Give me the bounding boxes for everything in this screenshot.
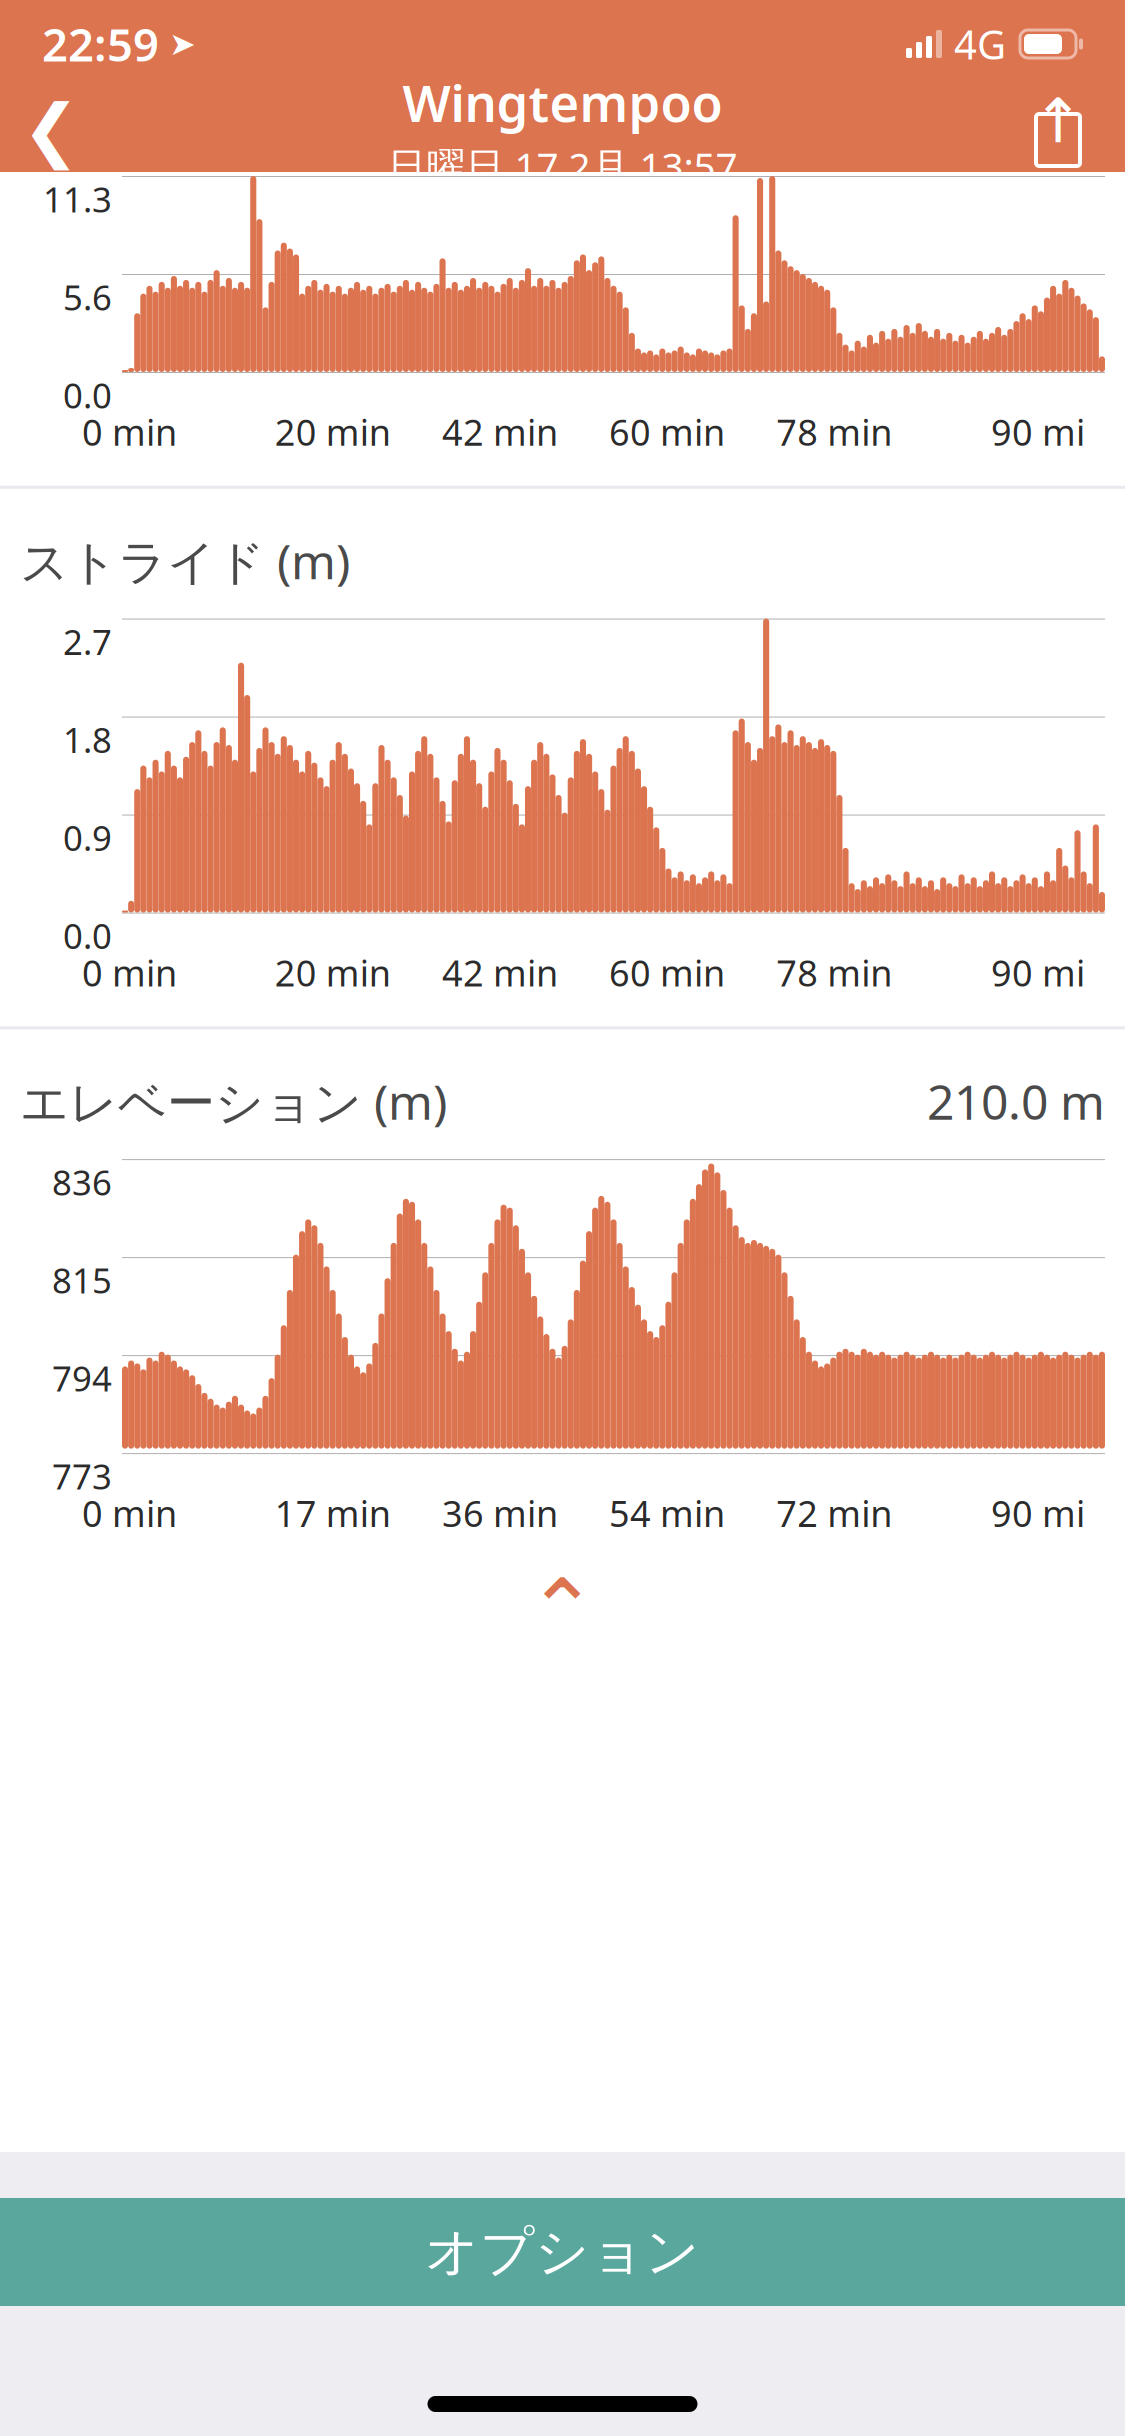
- staticText: 20 min: [275, 408, 391, 456]
- staticText: 1.8: [63, 716, 112, 762]
- staticText: 54 min: [609, 1489, 725, 1537]
- staticText: 20 min: [275, 948, 391, 996]
- button[interactable]: Share: [1013, 88, 1125, 172]
- staticText: 0.0: [63, 912, 112, 958]
- staticText: 0 min: [82, 1489, 177, 1537]
- staticText: 0 min: [82, 948, 177, 996]
- staticText: 836: [52, 1159, 112, 1205]
- staticText: 90 mi: [991, 408, 1085, 456]
- staticText: ストライド (m): [20, 529, 350, 592]
- staticText: 日曜日 17 2月 13:57: [387, 140, 737, 191]
- staticText: 0.9: [63, 814, 112, 860]
- staticText: 17 min: [275, 1489, 391, 1537]
- staticText: 0 min: [82, 408, 177, 456]
- staticText: Wingtempoo: [402, 69, 722, 136]
- staticText: 42 min: [442, 408, 558, 456]
- staticText: 5.6: [63, 274, 112, 320]
- button[interactable]: Back: [0, 88, 112, 172]
- staticText: 815: [52, 1257, 112, 1303]
- staticText: 36 min: [442, 1489, 558, 1537]
- staticText: 90 mi: [991, 948, 1085, 996]
- staticText: 773: [52, 1453, 112, 1499]
- staticText: 11.3: [43, 176, 112, 222]
- staticText: 22:59: [42, 14, 159, 74]
- staticText: 0.0: [63, 372, 112, 418]
- staticText: 90 mi: [991, 1489, 1085, 1537]
- staticText: 210.0 m: [927, 1069, 1105, 1133]
- staticText: 60 min: [609, 948, 725, 996]
- staticText: 72 min: [776, 1489, 892, 1537]
- staticText: ➤: [159, 26, 196, 62]
- staticText: 78 min: [776, 408, 892, 456]
- staticText: ↑: [1032, 86, 1083, 156]
- staticText: ⌃: [526, 1561, 598, 1658]
- staticText: ❮: [22, 91, 80, 169]
- staticText: 60 min: [609, 408, 725, 456]
- staticText: 2.7: [63, 618, 112, 664]
- staticText: エレベーション (m): [20, 1069, 447, 1133]
- staticText: 78 min: [776, 948, 892, 996]
- button[interactable]: オプション: [0, 2198, 1125, 2306]
- staticText: オプション: [425, 2219, 700, 2285]
- staticText: 794: [52, 1355, 112, 1401]
- staticText: 4G: [954, 17, 1006, 70]
- button[interactable]: Collapse: [0, 1567, 1125, 1653]
- staticText: 42 min: [442, 948, 558, 996]
